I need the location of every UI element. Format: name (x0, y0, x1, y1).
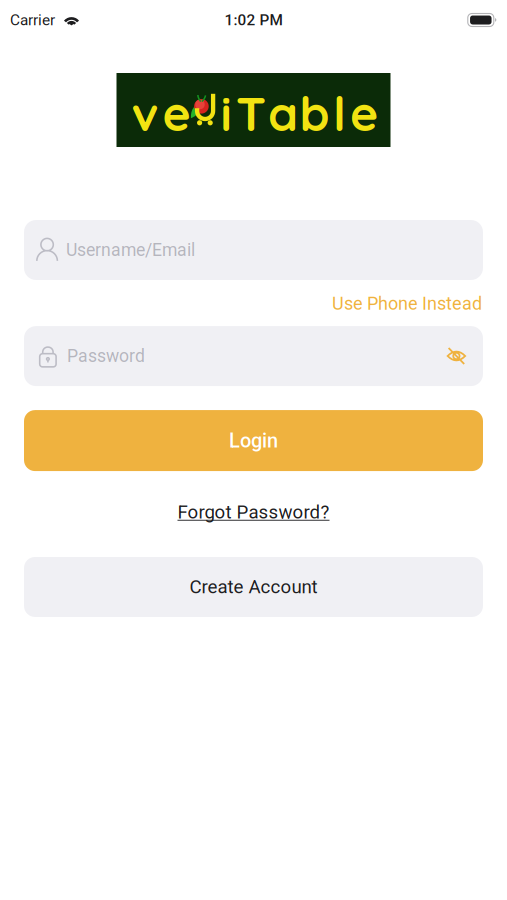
button[interactable]: Use Phone Instead (332, 293, 482, 314)
staticText: T (236, 83, 266, 143)
staticText: l (333, 83, 346, 143)
staticText: Create Account (189, 576, 317, 598)
staticText: i (220, 83, 231, 143)
staticText: Carrier (10, 11, 55, 29)
staticText: Use Phone Instead (332, 293, 482, 314)
staticText: v (131, 83, 158, 143)
staticText: Forgot Password? (177, 501, 329, 523)
staticText: b (299, 83, 329, 143)
staticText: e (350, 83, 378, 143)
staticText: e (162, 83, 190, 143)
staticText: Username/Email (66, 240, 195, 260)
staticText: Password (67, 346, 145, 366)
button[interactable]: Show password (446, 346, 467, 367)
staticText: 1:02 PM (224, 11, 282, 29)
button[interactable]: Create Account (24, 557, 483, 617)
button[interactable]: Login (24, 410, 483, 471)
staticText: a (268, 83, 298, 143)
staticText: Login (229, 429, 278, 452)
button[interactable]: Forgot Password? (177, 501, 329, 523)
